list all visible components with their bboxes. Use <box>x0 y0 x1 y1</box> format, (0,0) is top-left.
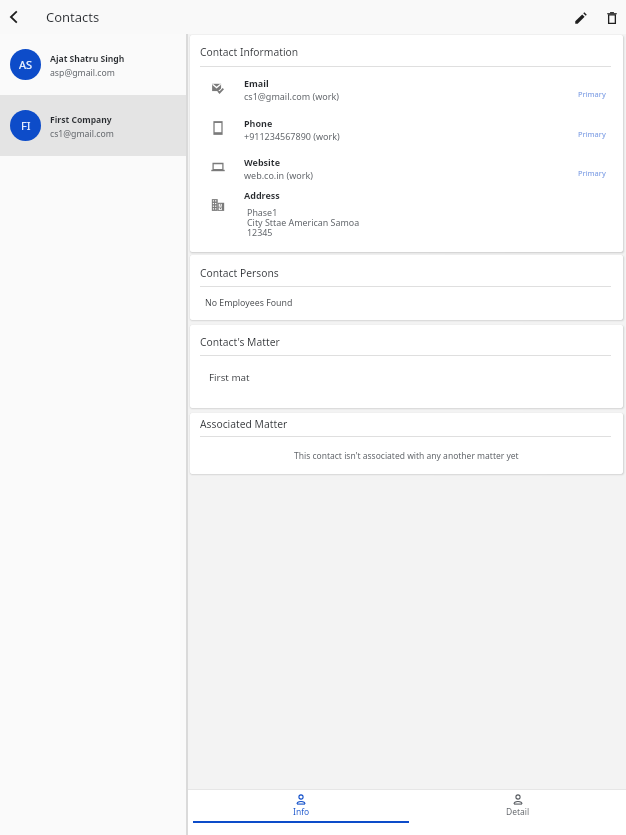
staticText: This contact isn't associated with any a… <box>294 450 519 462</box>
button[interactable]: Website <box>190 142 623 181</box>
staticText: Primary <box>578 89 606 99</box>
button[interactable]: Delete <box>590 0 624 34</box>
staticText: No Employees Found <box>205 297 293 309</box>
staticText: Associated Matter <box>200 417 288 431</box>
staticText: AS <box>19 57 33 72</box>
staticText: First mat <box>209 371 250 384</box>
staticText: Address <box>244 189 280 201</box>
button[interactable]: Phone <box>190 102 623 142</box>
staticText: Phone <box>244 117 273 129</box>
staticText: FI <box>21 118 31 133</box>
button[interactable]: AS <box>0 34 186 95</box>
staticText: Info <box>293 806 310 818</box>
button[interactable]: FI <box>0 95 186 156</box>
button[interactable]: Email <box>190 67 623 102</box>
staticText: asp@gmail.com <box>50 67 115 79</box>
button[interactable]: Back <box>0 0 34 34</box>
staticText: Contacts <box>46 8 100 26</box>
button[interactable]: Info <box>193 790 409 835</box>
staticText: cs1@gmail.com (work) <box>244 90 339 102</box>
staticText: Contact Persons <box>200 266 279 280</box>
button[interactable]: Detail <box>409 790 626 835</box>
staticText: +911234567890 (work) <box>244 130 340 142</box>
staticText: web.co.in (work) <box>244 169 313 181</box>
staticText: Contact's Matter <box>200 335 280 349</box>
staticText: Email <box>244 77 269 89</box>
staticText: First Company <box>50 114 112 126</box>
staticText: Website <box>244 156 281 168</box>
staticText: Ajat Shatru Singh <box>50 53 125 65</box>
staticText: Phase1 City Sttae American Samoa 12345 <box>247 206 360 239</box>
button[interactable]: Address <box>190 181 623 239</box>
button[interactable]: Edit <box>552 0 586 34</box>
staticText: Primary <box>578 168 606 178</box>
staticText: Contact Information <box>200 45 299 59</box>
staticText: Primary <box>578 129 606 139</box>
staticText: Detail <box>506 806 530 818</box>
staticText: cs1@gmail.com <box>50 128 114 140</box>
